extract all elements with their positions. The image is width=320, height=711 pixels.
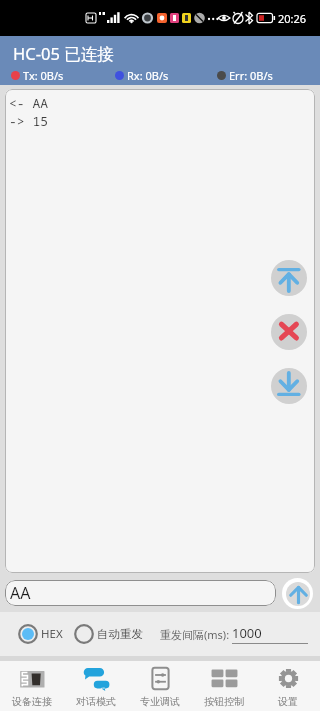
button[interactable]: HEX xyxy=(18,612,63,656)
staticText: 对话模式 xyxy=(76,695,116,708)
button[interactable]: 自动重发 xyxy=(74,612,143,656)
staticText: 专业调试 xyxy=(140,695,180,708)
staticText: HEX xyxy=(41,626,63,642)
staticText: AA xyxy=(10,582,31,604)
button[interactable]: 设备连接 xyxy=(0,661,64,711)
button[interactable]: 按钮控制 xyxy=(192,661,256,711)
staticText: 设备连接 xyxy=(12,695,52,708)
staticText: -> 15 xyxy=(9,112,49,130)
staticText: 自动重发 xyxy=(97,627,143,641)
button[interactable]: Scroll to bottom xyxy=(271,368,307,404)
staticText: Tx: 0B/s xyxy=(23,68,64,83)
button[interactable]: Send xyxy=(282,578,313,609)
staticText: 20:26 xyxy=(278,11,307,26)
button[interactable]: 专业调试 xyxy=(128,661,192,711)
button[interactable]: 1000 xyxy=(232,624,308,644)
button[interactable]: Clear log xyxy=(271,314,307,350)
staticText: 1000 xyxy=(232,624,262,642)
staticText: 重发间隔(ms): xyxy=(160,627,232,642)
staticText: 按钮控制 xyxy=(204,695,244,708)
staticText: HC-05 已连接 xyxy=(13,42,114,65)
button[interactable]: AA xyxy=(5,580,276,606)
staticText: Err: 0B/s xyxy=(229,68,273,83)
button[interactable]: 设置 xyxy=(256,661,320,711)
button[interactable]: 对话模式 xyxy=(64,661,128,711)
button[interactable]: Scroll to top xyxy=(271,260,307,296)
staticText: Rx: 0B/s xyxy=(127,68,169,83)
staticText: 设置 xyxy=(278,695,298,708)
staticText: <- AA xyxy=(9,94,49,112)
